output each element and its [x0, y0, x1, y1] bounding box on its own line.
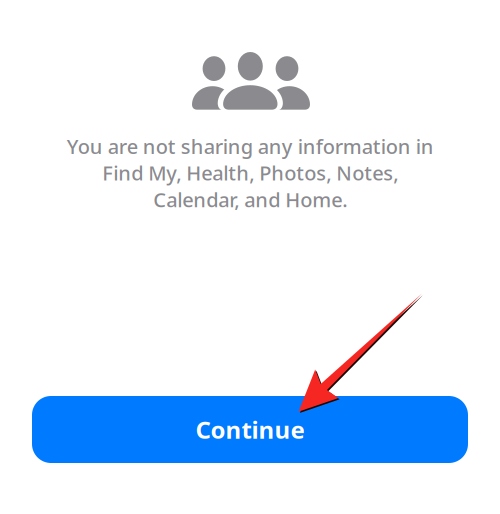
button[interactable]: Continue [32, 396, 468, 463]
staticText: You are not sharing any information in F… [66, 133, 433, 213]
staticText: Continue [195, 414, 304, 445]
